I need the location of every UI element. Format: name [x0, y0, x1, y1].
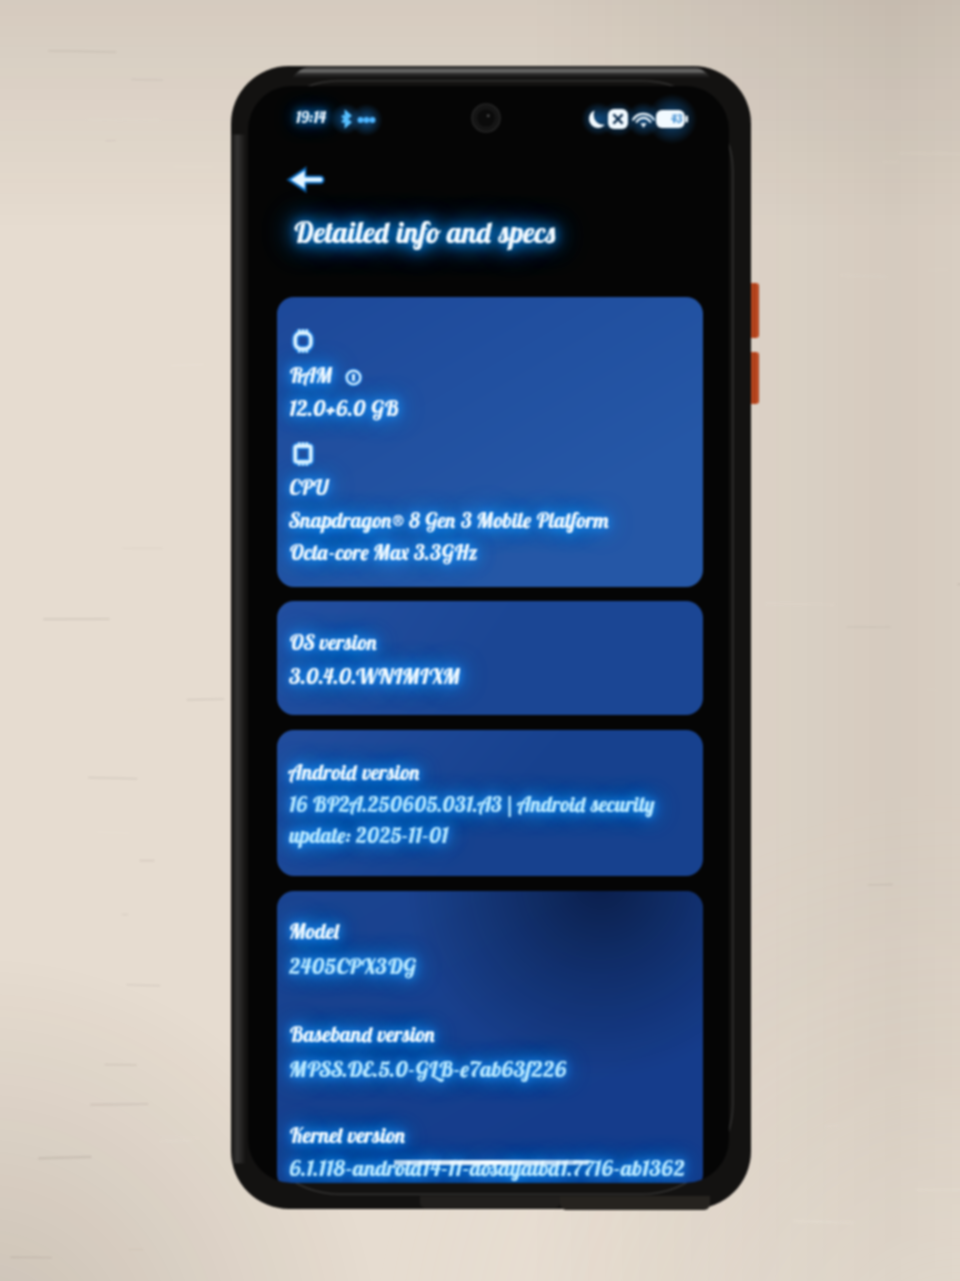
staticText: 6.1.118-android14-11-aosaljatbd1.7716-ab…: [289, 1154, 686, 1182]
staticText: 16 BP2A.250605.031.A3 | Android security: [289, 791, 655, 817]
staticText: 2405CPX3DG: [289, 952, 416, 980]
staticText: 6.1.118-android14-11-aosaljatbd1.7716-ab…: [289, 1154, 686, 1182]
staticText: update: 2025-11-01: [289, 822, 449, 848]
staticText: Snapdragon® 8 Gen 3 Mobile Platform: [289, 507, 610, 533]
staticText: Model: [289, 918, 340, 944]
staticText: Kernel version: [289, 1122, 406, 1148]
staticText: OS version: [289, 629, 378, 655]
staticText: OS version: [289, 629, 378, 655]
staticText: MPSS.DE.5.0-GLB-e7ab63f226: [289, 1055, 567, 1083]
staticText: Octa-core Max 3.3GHz: [289, 539, 477, 565]
staticText: 19:14: [296, 108, 327, 127]
button[interactable]: RAM: [277, 297, 703, 587]
staticText: Kernel version: [289, 1122, 406, 1148]
staticText: CPU: [289, 474, 329, 500]
button[interactable]: Android version: [277, 730, 703, 876]
staticText: update: 2025-11-01: [289, 822, 449, 848]
staticText: Model: [289, 918, 340, 944]
staticText: 2405CPX3DG: [289, 952, 416, 980]
button[interactable]: Back: [286, 158, 326, 198]
staticText: Model: [289, 918, 340, 944]
staticText: 3.0.4.0.WNIMIXM: [289, 662, 460, 690]
staticText: 12.0+6.0 GB: [289, 394, 399, 422]
staticText: 16 BP2A.250605.031.A3 | Android security: [289, 791, 655, 817]
staticText: CPU: [289, 474, 329, 500]
staticText: 12.0+6.0 GB: [289, 394, 399, 422]
staticText: 6.1.118-android14-11-aosaljatbd1.7716-ab…: [289, 1154, 686, 1182]
staticText: 43: [671, 112, 683, 126]
staticText: Snapdragon® 8 Gen 3 Mobile Platform: [289, 507, 610, 533]
staticText: Android version: [289, 759, 421, 785]
staticText: Snapdragon® 8 Gen 3 Mobile Platform: [289, 507, 610, 533]
staticText: RAM: [289, 362, 333, 388]
staticText: CPU: [289, 474, 329, 500]
button[interactable]: OS version: [277, 601, 703, 715]
staticText: Detailed info and specs: [293, 214, 557, 250]
staticText: Kernel version: [289, 1122, 406, 1148]
staticText: RAM: [289, 362, 333, 388]
staticText: Baseband version: [289, 1021, 436, 1047]
staticText: 19:14: [296, 108, 327, 127]
staticText: 6.1.118-android14-11-aosaljatbd1.7716-ab…: [289, 1154, 686, 1182]
staticText: Android version: [289, 759, 421, 785]
staticText: 3.0.4.0.WNIMIXM: [289, 662, 460, 690]
staticText: Detailed info and specs: [293, 214, 557, 250]
staticText: update: 2025-11-01: [289, 822, 449, 848]
staticText: Android version: [289, 759, 421, 785]
staticText: Octa-core Max 3.3GHz: [289, 539, 477, 565]
staticText: MPSS.DE.5.0-GLB-e7ab63f226: [289, 1055, 567, 1083]
staticText: Baseband version: [289, 1021, 436, 1047]
staticText: OS version: [289, 629, 378, 655]
staticText: Android version: [289, 759, 421, 785]
staticText: CPU: [289, 474, 329, 500]
staticText: Snapdragon® 8 Gen 3 Mobile Platform: [289, 507, 610, 533]
staticText: 12.0+6.0 GB: [289, 394, 399, 422]
staticText: 16 BP2A.250605.031.A3 | Android security: [289, 791, 655, 817]
staticText: Kernel version: [289, 1122, 406, 1148]
staticText: RAM: [289, 362, 333, 388]
staticText: 16 BP2A.250605.031.A3 | Android security: [289, 791, 655, 817]
button[interactable]: Model: [277, 891, 703, 1183]
staticText: Octa-core Max 3.3GHz: [289, 539, 477, 565]
staticText: 12.0+6.0 GB: [289, 394, 399, 422]
staticText: OS version: [289, 629, 378, 655]
staticText: 19:14: [296, 108, 327, 127]
staticText: 3.0.4.0.WNIMIXM: [289, 662, 460, 690]
staticText: Detailed info and specs: [293, 214, 557, 250]
staticText: Baseband version: [289, 1021, 436, 1047]
staticText: RAM: [289, 362, 333, 388]
staticText: 2405CPX3DG: [289, 952, 416, 980]
staticText: 3.0.4.0.WNIMIXM: [289, 662, 460, 690]
staticText: 2405CPX3DG: [289, 952, 416, 980]
staticText: update: 2025-11-01: [289, 822, 449, 848]
staticText: MPSS.DE.5.0-GLB-e7ab63f226: [289, 1055, 567, 1083]
staticText: Baseband version: [289, 1021, 436, 1047]
staticText: MPSS.DE.5.0-GLB-e7ab63f226: [289, 1055, 567, 1083]
staticText: Detailed info and specs: [293, 214, 557, 250]
staticText: Octa-core Max 3.3GHz: [289, 539, 477, 565]
staticText: Model: [289, 918, 340, 944]
staticText: 19:14: [296, 108, 327, 127]
